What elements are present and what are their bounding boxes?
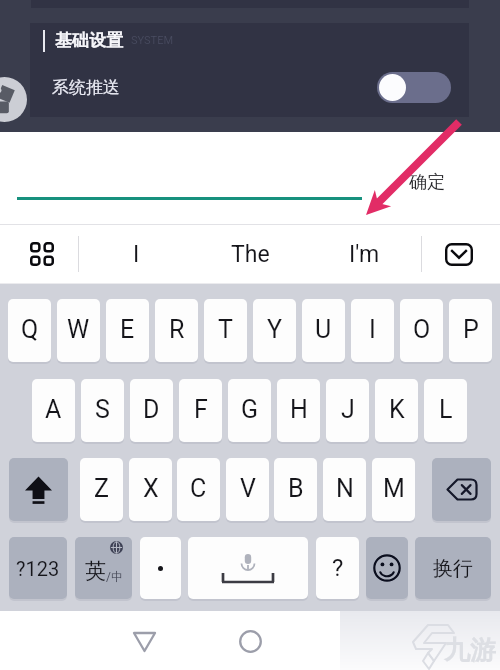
staticText: P [463, 315, 479, 344]
button[interactable]: X [129, 458, 172, 521]
button[interactable]: 系统推送 [30, 58, 469, 117]
staticText: 系统推送 [52, 77, 120, 98]
button[interactable]: The [193, 230, 307, 278]
staticText: Q [21, 315, 39, 344]
button[interactable]: Assistant [0, 77, 27, 122]
staticText: K [389, 395, 405, 424]
button[interactable]: N [323, 458, 366, 521]
button[interactable]: Home [223, 614, 277, 668]
staticText: E [120, 315, 135, 344]
button[interactable]: C [177, 458, 220, 521]
staticText: T [218, 315, 233, 344]
staticText: 换行 [433, 556, 473, 581]
staticText: U [315, 315, 332, 344]
staticText: G [241, 395, 259, 424]
button[interactable]: I [79, 230, 193, 278]
staticText: ? [332, 554, 344, 582]
button[interactable]: Emoji [366, 537, 408, 599]
button[interactable]: Space [188, 537, 308, 599]
button[interactable]: Backspace [432, 458, 491, 521]
button[interactable]: Z [80, 458, 123, 521]
staticText: W [67, 315, 90, 344]
button[interactable]: P [449, 299, 492, 362]
staticText: N [336, 474, 354, 503]
staticText: 九游 [444, 634, 496, 667]
staticText: Z [94, 474, 109, 503]
staticText: D [143, 395, 160, 424]
staticText: /中 [106, 569, 123, 584]
button[interactable]: F [179, 379, 222, 442]
staticText: Y [267, 315, 283, 344]
button[interactable]: R [155, 299, 198, 362]
button[interactable]: U [302, 299, 345, 362]
button[interactable]: Period [140, 537, 181, 599]
staticText: S [95, 395, 110, 424]
button[interactable]: 确定 [409, 171, 445, 194]
staticText: L [439, 395, 453, 424]
staticText: 英 [85, 558, 106, 584]
button[interactable]: B [274, 458, 317, 521]
button[interactable]: Language [75, 537, 132, 599]
staticText: 基础设置 [55, 30, 123, 51]
staticText: B [288, 474, 304, 503]
button[interactable]: A [32, 379, 75, 442]
button[interactable]: D [130, 379, 173, 442]
button[interactable]: I [351, 299, 394, 362]
button[interactable]: Apps [5, 230, 78, 278]
staticText: H [290, 395, 308, 424]
button[interactable]: J [326, 379, 369, 442]
button[interactable]: Shift [9, 458, 68, 521]
button[interactable]: Back [117, 614, 171, 668]
button[interactable]: I'm [307, 230, 421, 278]
staticText: V [240, 474, 256, 503]
button[interactable]: 换行 [415, 537, 491, 599]
button[interactable]: G [228, 379, 271, 442]
button[interactable]: H [277, 379, 320, 442]
staticText: 确定 [409, 171, 445, 194]
staticText: I'm [349, 241, 380, 268]
staticText: O [413, 315, 431, 344]
button[interactable]: S [81, 379, 124, 442]
staticText: R [169, 315, 185, 344]
button[interactable]: K [375, 379, 418, 442]
button[interactable]: M [372, 458, 415, 521]
staticText: I [133, 241, 140, 268]
button[interactable]: V [226, 458, 269, 521]
button[interactable]: Y [253, 299, 296, 362]
staticText: F [194, 395, 208, 424]
button[interactable]: W [57, 299, 100, 362]
staticText: ?123 [16, 557, 60, 580]
button[interactable]: L [424, 379, 467, 442]
staticText: I [369, 315, 376, 344]
staticText: X [143, 474, 159, 503]
staticText: The [231, 241, 270, 268]
staticText: C [190, 474, 207, 503]
staticText: A [45, 395, 62, 424]
button[interactable]: Q [8, 299, 51, 362]
button[interactable]: ?123 [9, 537, 67, 599]
staticText: J [341, 395, 355, 424]
button[interactable]: E [106, 299, 149, 362]
button[interactable]: O [400, 299, 443, 362]
button[interactable]: Hide keyboard [422, 230, 496, 278]
staticText: SYSTEM [131, 34, 174, 47]
button[interactable]: ? [316, 537, 359, 599]
staticText: M [383, 474, 405, 503]
button[interactable]: T [204, 299, 247, 362]
